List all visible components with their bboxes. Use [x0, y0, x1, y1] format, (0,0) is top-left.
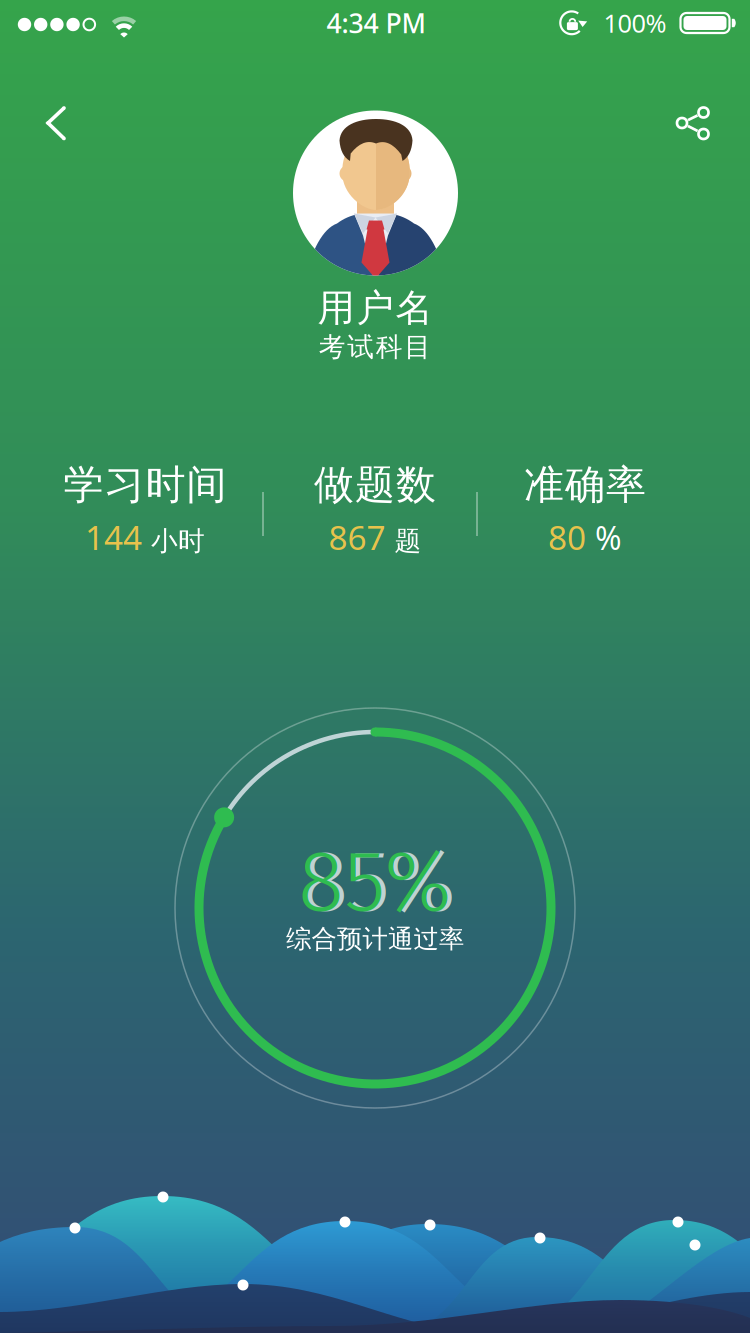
staticText: 4:34 PM — [326, 5, 425, 41]
staticText: 85% — [302, 831, 456, 933]
staticText: 100% — [603, 6, 666, 40]
staticText: 准确率 — [524, 460, 646, 509]
staticText: 题 — [394, 525, 421, 557]
button[interactable]: Share — [655, 100, 719, 146]
staticText: 综合预计通过率 — [286, 923, 464, 954]
button[interactable]: Back — [28, 105, 84, 141]
staticText: % — [595, 516, 622, 559]
staticText: 做题数 — [314, 460, 436, 509]
staticText: 小时 — [151, 525, 205, 557]
staticText: 学习时间 — [63, 460, 226, 509]
staticText: 80 — [548, 515, 586, 559]
staticText: 867 — [328, 515, 385, 559]
staticText: 85% — [298, 831, 452, 933]
staticText: 用户名 — [317, 285, 432, 331]
staticText: 考试科目 — [319, 331, 431, 363]
staticText: 144 — [85, 515, 142, 559]
